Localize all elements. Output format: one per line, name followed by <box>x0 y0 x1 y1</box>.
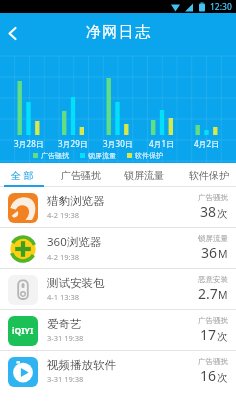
staticText: 软件保护 <box>135 151 163 160</box>
staticText: 3-31 19:38 <box>47 333 84 343</box>
button[interactable]: 广告骚扰 <box>52 163 110 187</box>
staticText: 测试安装包 <box>47 276 105 290</box>
staticText: 视频播放软件 <box>47 358 116 372</box>
staticText: 广告骚扰 <box>41 151 69 160</box>
staticText: M <box>218 247 228 261</box>
staticText: 2.7 <box>198 284 218 303</box>
staticText: 3月28日 <box>14 138 44 149</box>
staticText: 360浏览器 <box>47 234 102 250</box>
staticText: 净网日志 <box>85 23 151 42</box>
button[interactable]: 锁屏流量 <box>115 163 173 187</box>
staticText: 广告骚扰 <box>198 316 228 325</box>
staticText: 广告骚扰 <box>198 193 228 202</box>
staticText: 软件保护 <box>189 169 229 182</box>
button[interactable] <box>0 13 24 53</box>
button[interactable]: 软件保护 <box>180 163 236 187</box>
staticText: 3月30日 <box>103 138 133 149</box>
staticText: 36 <box>201 243 218 262</box>
staticText: 次 <box>217 207 228 220</box>
button[interactable]: 测试安装包 <box>0 269 236 310</box>
button[interactable]: iQIYI <box>0 310 236 351</box>
staticText: 3月29日 <box>58 138 88 149</box>
staticText: M <box>218 288 228 302</box>
button[interactable]: 视频播放软件 <box>0 351 236 392</box>
button[interactable]: 猎豹浏览器 <box>0 187 236 228</box>
staticText: 次 <box>217 371 228 384</box>
staticText: 恶意安装 <box>198 275 228 284</box>
staticText: 3-31 19:38 <box>47 374 84 384</box>
staticText: 4月1日 <box>149 138 175 149</box>
staticText: 锁屏流量 <box>198 234 228 243</box>
staticText: 广告骚扰 <box>198 357 228 366</box>
staticText: 次 <box>217 330 228 343</box>
staticText: 38 <box>200 202 217 221</box>
staticText: 4-2 19:38 <box>47 210 80 220</box>
staticText: 4-2 19:38 <box>47 252 80 262</box>
staticText: 全 部 <box>11 168 34 182</box>
staticText: 4月2日 <box>194 138 220 149</box>
staticText: 猎豹浏览器 <box>47 194 105 208</box>
button[interactable]: 全 部 <box>0 163 51 187</box>
staticText: 锁屏流量 <box>124 169 164 182</box>
staticText: 锁屏流量 <box>88 151 116 160</box>
staticText: 17 <box>200 325 217 344</box>
button[interactable]: 360浏览器 <box>0 228 236 269</box>
staticText: 4-1 13:38 <box>47 292 80 302</box>
staticText: 12:30 <box>210 1 232 13</box>
staticText: 爱奇艺 <box>47 317 82 331</box>
staticText: iQIYI <box>12 325 34 337</box>
staticText: 16 <box>200 366 217 385</box>
staticText: 广告骚扰 <box>61 169 101 182</box>
